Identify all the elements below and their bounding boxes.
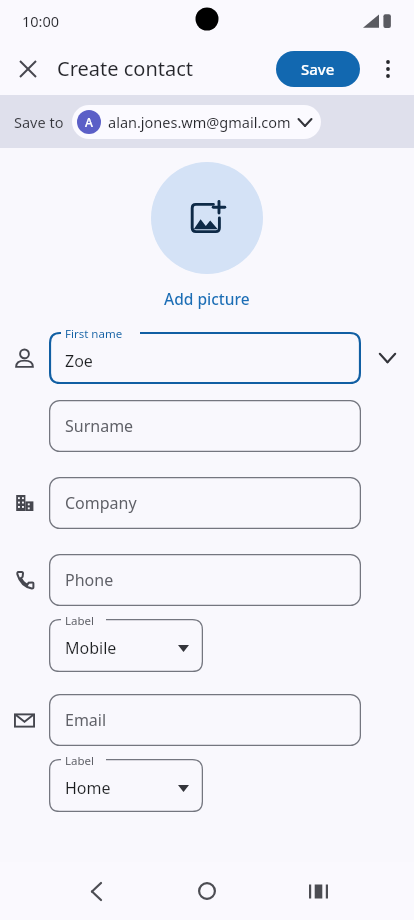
staticText: 10:00 bbox=[22, 11, 60, 31]
staticText: alan.jones.wm@gmail.com bbox=[108, 112, 291, 132]
staticText: Phone bbox=[65, 569, 114, 591]
staticText: First name bbox=[65, 326, 123, 342]
button[interactable]: Close bbox=[10, 51, 46, 87]
button[interactable]: Label bbox=[49, 619, 203, 672]
staticText: Home bbox=[65, 777, 111, 799]
button[interactable]: Recent apps bbox=[295, 868, 341, 914]
button[interactable]: More options bbox=[368, 49, 408, 89]
button[interactable]: A bbox=[72, 105, 321, 139]
button[interactable]: Add picture bbox=[151, 162, 263, 274]
staticText: Create contact bbox=[57, 55, 194, 82]
staticText: Add picture bbox=[164, 288, 250, 309]
staticText: Company bbox=[65, 492, 137, 514]
staticText: Mobile bbox=[65, 637, 117, 659]
button[interactable]: First name bbox=[49, 332, 361, 384]
button[interactable]: Expand name fields bbox=[361, 332, 413, 384]
button[interactable]: Back bbox=[73, 868, 119, 914]
staticText: Label bbox=[65, 613, 95, 629]
button[interactable]: Add picture bbox=[158, 286, 256, 311]
button[interactable]: Save bbox=[276, 51, 360, 87]
staticText: Email bbox=[65, 709, 107, 731]
button[interactable]: Label bbox=[49, 759, 203, 812]
button[interactable]: Phone bbox=[49, 554, 361, 606]
button[interactable]: Company bbox=[49, 477, 361, 529]
button[interactable]: Surname bbox=[49, 400, 361, 452]
button[interactable]: Home bbox=[184, 868, 230, 914]
staticText: Save to bbox=[14, 112, 64, 132]
staticText: A bbox=[85, 114, 93, 130]
staticText: Zoe bbox=[65, 350, 93, 372]
staticText: Label bbox=[65, 753, 95, 769]
staticText: Surname bbox=[65, 415, 134, 437]
staticText: Save bbox=[301, 59, 335, 79]
button[interactable]: Email bbox=[49, 694, 361, 746]
